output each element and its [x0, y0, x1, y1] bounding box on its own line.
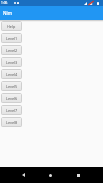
staticText: Level1 — [6, 36, 18, 41]
button[interactable]: Recent apps — [70, 167, 87, 183]
button[interactable]: Level7 — [1, 105, 22, 115]
staticText: Level8 — [6, 120, 18, 125]
button[interactable]: Help — [1, 21, 22, 31]
staticText: Level7 — [6, 108, 18, 113]
button[interactable]: Level8 — [1, 117, 22, 127]
button[interactable]: Level1 — [1, 33, 22, 43]
staticText: Help — [7, 24, 16, 29]
staticText: 1:06 — [1, 1, 8, 5]
staticText: Level5 — [6, 84, 18, 89]
button[interactable]: Level5 — [1, 81, 22, 91]
staticText: Level6 — [6, 96, 18, 101]
button[interactable]: Home — [42, 167, 59, 183]
button[interactable]: Back — [15, 167, 32, 183]
button[interactable]: Level6 — [1, 93, 22, 103]
staticText: Level3 — [6, 60, 18, 65]
staticText: Nim — [3, 10, 12, 16]
button[interactable]: Level3 — [1, 57, 22, 67]
staticText: Level4 — [6, 72, 18, 77]
button[interactable]: Level4 — [1, 69, 22, 79]
button[interactable]: Level2 — [1, 45, 22, 55]
staticText: Level2 — [6, 48, 18, 53]
